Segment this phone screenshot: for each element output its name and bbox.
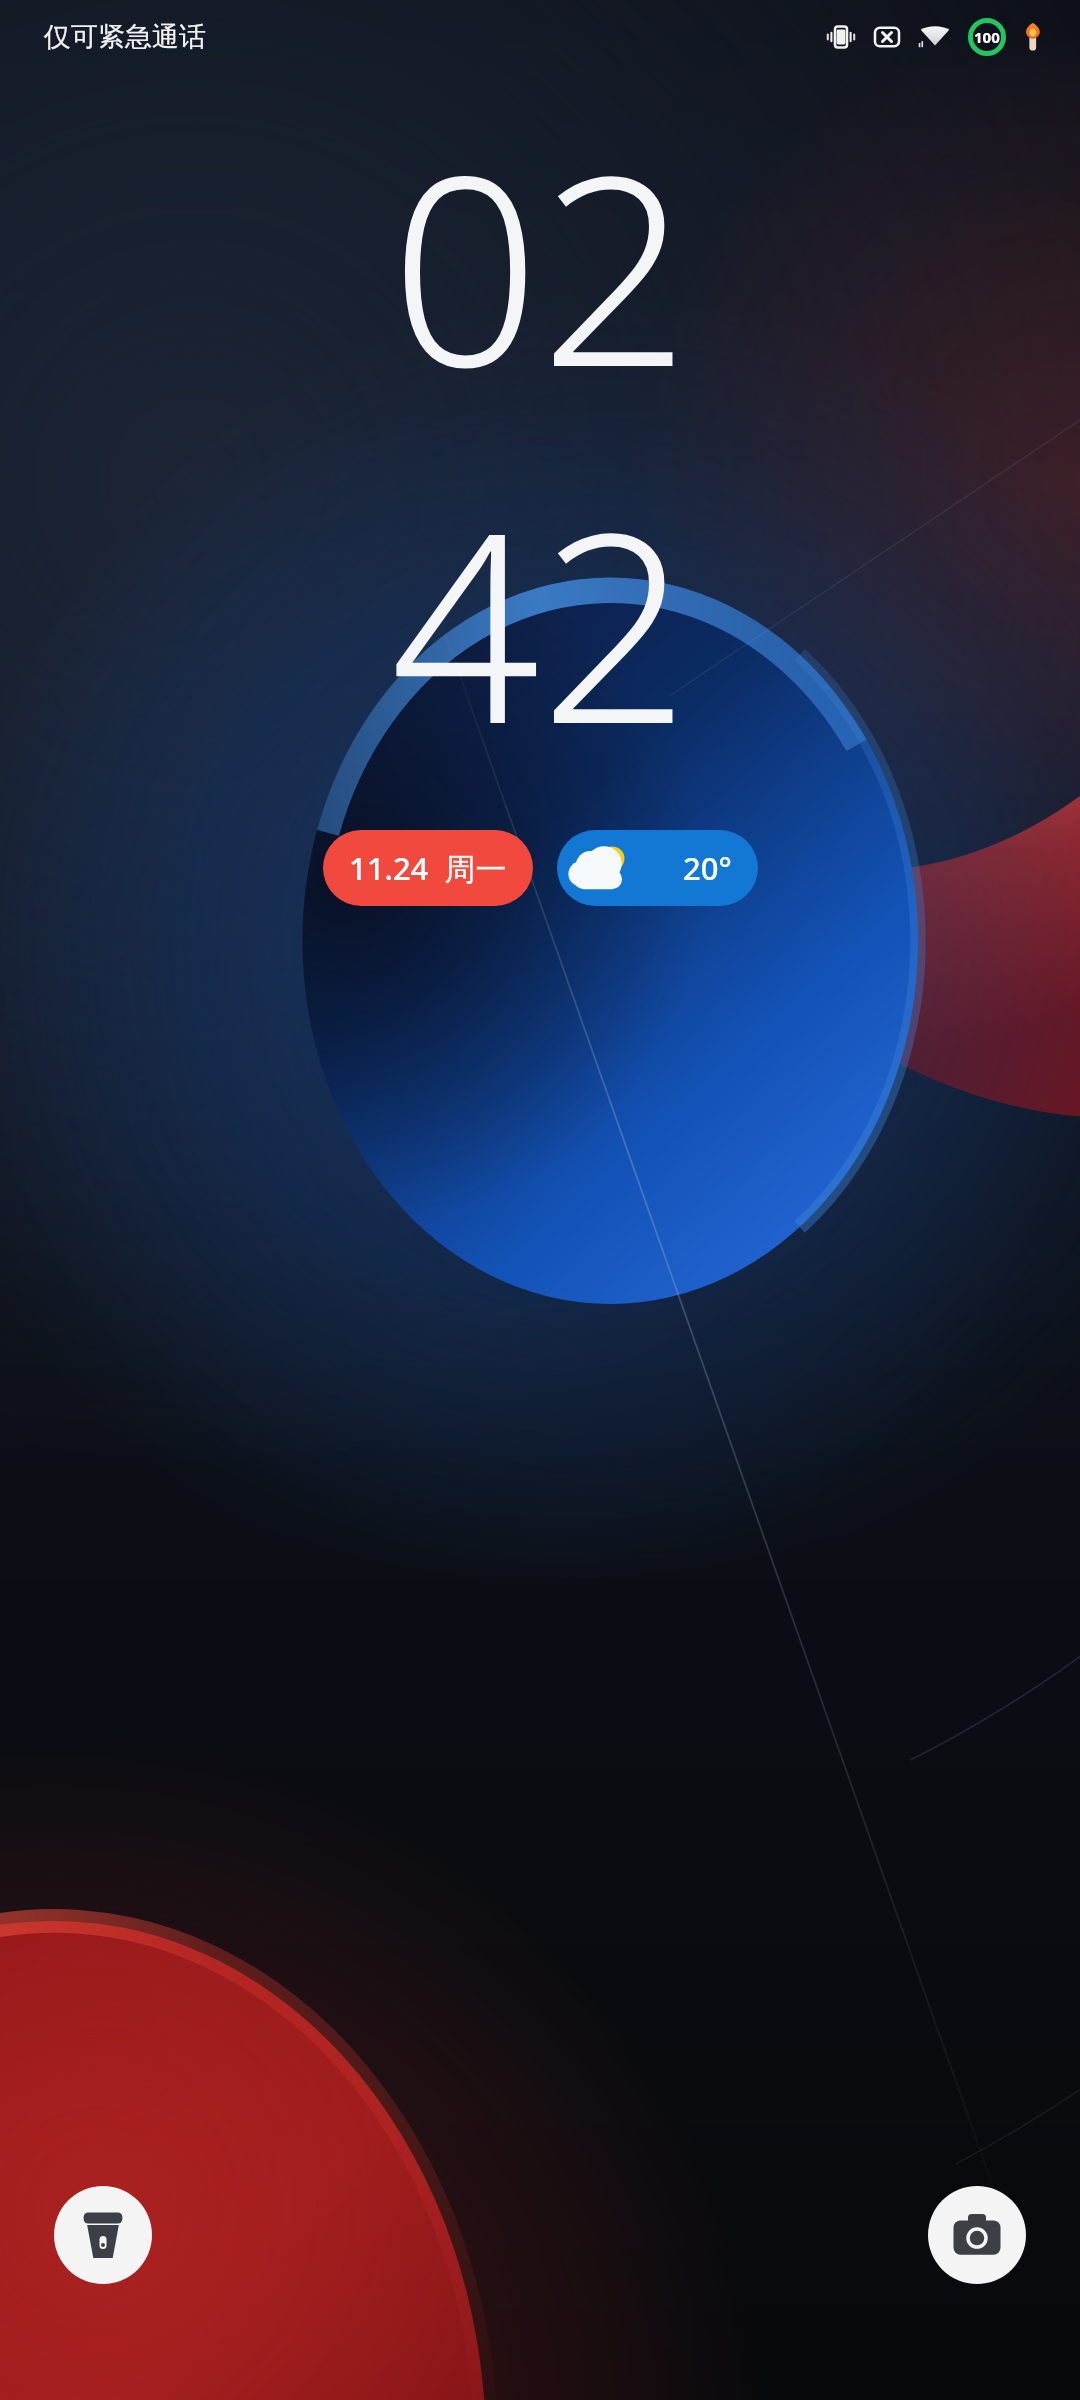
staticText: 42 bbox=[390, 443, 690, 800]
button[interactable]: 20° bbox=[557, 830, 758, 906]
button[interactable]: Camera bbox=[928, 2186, 1026, 2284]
staticText: 20° bbox=[683, 847, 732, 889]
staticText: 02 bbox=[390, 86, 690, 443]
staticText: 仅可紧急通话 bbox=[44, 20, 206, 54]
button[interactable]: 11.24 周一 bbox=[323, 830, 533, 906]
staticText: 100 bbox=[974, 27, 1000, 47]
button[interactable]: Flashlight bbox=[54, 2186, 152, 2284]
staticText: 11.24 周一 bbox=[349, 847, 507, 889]
